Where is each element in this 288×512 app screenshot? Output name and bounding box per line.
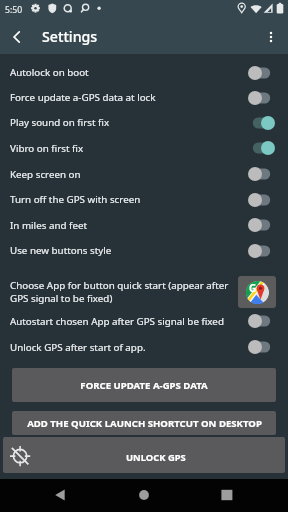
staticText: Settings [42,27,98,46]
staticText: ADD THE QUICK LAUNCH SHORTCUT ON DESKTOP [27,417,262,430]
staticText: FORCE UPDATE A-GPS DATA [80,379,208,392]
staticText: Autolock on boot [10,66,248,79]
button[interactable]: Autostart chosen App after GPS signal be… [0,308,288,334]
button[interactable]: Unlock GPS after start of app. [0,334,288,360]
button[interactable]: FORCE UPDATE A-GPS DATA [12,368,276,402]
button[interactable]: Choose App for button quick start (appea… [0,263,288,308]
staticText: In miles and feet [10,219,248,232]
button[interactable]: ADD THE QUICK LAUNCH SHORTCUT ON DESKTOP [12,411,276,435]
button[interactable]: Recent apps [192,479,288,512]
button[interactable]: GPS locked [3,437,285,473]
button[interactable]: Autolock on boot [0,60,288,85]
staticText: 5:50 [5,4,23,16]
staticText: Keep screen on [10,168,248,181]
staticText: UNLOCK GPS [126,451,186,464]
button[interactable]: In miles and feet [0,212,288,238]
other: GPS locked [3,437,285,473]
button[interactable]: Choose application [238,276,276,308]
button[interactable]: More options [254,20,288,54]
staticText: Choose App for button quick start (appea… [10,279,233,305]
staticText: Play sound on first fix [10,116,248,129]
button[interactable]: Home [96,479,192,512]
staticText: G [249,281,257,295]
button[interactable]: Force update a-GPS data at lock [0,85,288,110]
button[interactable]: Play sound on first fix [0,110,288,135]
staticText: Use new buttons style [10,244,248,257]
button[interactable]: Back [0,20,34,54]
button[interactable]: Use new buttons style [0,238,288,263]
staticText: Turn off the GPS with screen [10,193,248,206]
button[interactable]: Vibro on first fix [0,135,288,161]
button[interactable]: Turn off the GPS with screen [0,187,288,212]
staticText: Vibro on first fix [10,142,248,155]
staticText: Force update a-GPS data at lock [10,91,248,104]
staticText: Unlock GPS after start of app. [10,341,248,354]
staticText: Autostart chosen App after GPS signal be… [10,315,248,328]
button[interactable]: Back [0,479,96,512]
button[interactable]: Keep screen on [0,161,288,187]
